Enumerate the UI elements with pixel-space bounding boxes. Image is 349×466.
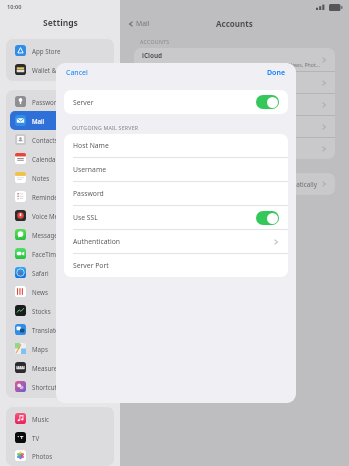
button[interactable]: Server on (256, 95, 279, 109)
staticText: iCloud (142, 51, 163, 60)
staticText: Server Port (73, 261, 109, 270)
staticText: Maps (32, 345, 48, 353)
button[interactable]: Server Port (64, 254, 288, 277)
button[interactable] (134, 72, 335, 93)
button[interactable]: Safari (10, 263, 110, 282)
button[interactable]: Contacts (10, 130, 110, 149)
button[interactable]: Stocks (10, 301, 110, 320)
staticText: Username (73, 165, 107, 174)
staticText: Mail (136, 19, 150, 28)
staticText: App Store (32, 47, 61, 55)
staticText: Music (32, 415, 49, 423)
staticText: Use SSL (73, 213, 98, 222)
staticText: Password (73, 189, 104, 198)
staticText: Translate (32, 326, 59, 334)
button[interactable]: App Store (10, 41, 110, 60)
button[interactable]: Automatically (134, 173, 335, 195)
staticText: Automatically (276, 180, 317, 189)
staticText: Passwords (32, 98, 63, 106)
staticText: Calendar (32, 155, 59, 163)
staticText: Notes (32, 174, 50, 182)
button[interactable]: Done (265, 66, 288, 80)
button[interactable]: Messages (10, 225, 110, 244)
staticText: Wallet & Apple Pay (32, 66, 87, 74)
button[interactable]: Server (64, 90, 288, 114)
button[interactable]: Passwords (10, 92, 110, 111)
staticText: OUTGOING MAIL SERVER (72, 124, 139, 131)
button[interactable]: Authentication (64, 230, 288, 253)
staticText: Voice Memos (32, 212, 71, 220)
staticText: Measure (32, 364, 58, 372)
button[interactable]: TV (10, 428, 110, 447)
button[interactable] (134, 116, 335, 137)
button[interactable]: Calendar (10, 149, 110, 168)
button[interactable]: Measure (10, 358, 110, 377)
button[interactable]: Voice Memos (10, 206, 110, 225)
button[interactable]: Mail (10, 111, 110, 130)
staticText: Cancel (66, 68, 88, 78)
staticText: Reminders (32, 193, 64, 201)
staticText: Safari (32, 269, 49, 277)
staticText: Settings (43, 17, 78, 29)
button[interactable]: Photos (10, 447, 110, 464)
staticText: Done (267, 68, 286, 78)
staticText: FaceTime (32, 250, 60, 258)
button[interactable]: Password (64, 182, 288, 205)
staticText: Shortcuts (32, 383, 60, 391)
button[interactable]: Notes (10, 168, 110, 187)
button[interactable]: Cancel (64, 66, 90, 80)
button[interactable]: Music (10, 409, 110, 428)
button[interactable]: Use SSL on (256, 211, 279, 225)
button[interactable]: iCloud (134, 48, 335, 71)
button[interactable]: Maps (10, 339, 110, 358)
staticText: Server (73, 98, 94, 107)
button[interactable]: FaceTime (10, 244, 110, 263)
staticText: Accounts (216, 18, 253, 29)
staticText: Mail (32, 117, 45, 125)
staticText: TV (32, 434, 40, 442)
button[interactable]: Username (64, 158, 288, 181)
staticText: Messages (32, 231, 61, 239)
staticText: 10:00 (7, 3, 22, 11)
button[interactable]: Shortcuts (10, 377, 110, 396)
staticText: Authentication (73, 237, 121, 246)
staticText: News (32, 288, 48, 296)
button[interactable] (134, 94, 335, 115)
button[interactable]: Wallet & Apple Pay (10, 60, 110, 79)
staticText: ACCOUNTS (140, 38, 170, 45)
button[interactable]: Back to Mail (128, 19, 150, 28)
staticText: Stocks (32, 307, 51, 315)
staticText: iCloud Drive, Contacts, Calendars, Safar… (142, 61, 321, 68)
button[interactable]: Reminders (10, 187, 110, 206)
staticText: Photos (32, 452, 53, 460)
button[interactable]: Use SSL (64, 206, 288, 229)
button[interactable]: Host Name (64, 134, 288, 157)
button[interactable]: Translate (10, 320, 110, 339)
staticText: Contacts (32, 136, 58, 144)
staticText: Host Name (73, 141, 109, 150)
button[interactable] (134, 138, 335, 159)
button[interactable]: News (10, 282, 110, 301)
